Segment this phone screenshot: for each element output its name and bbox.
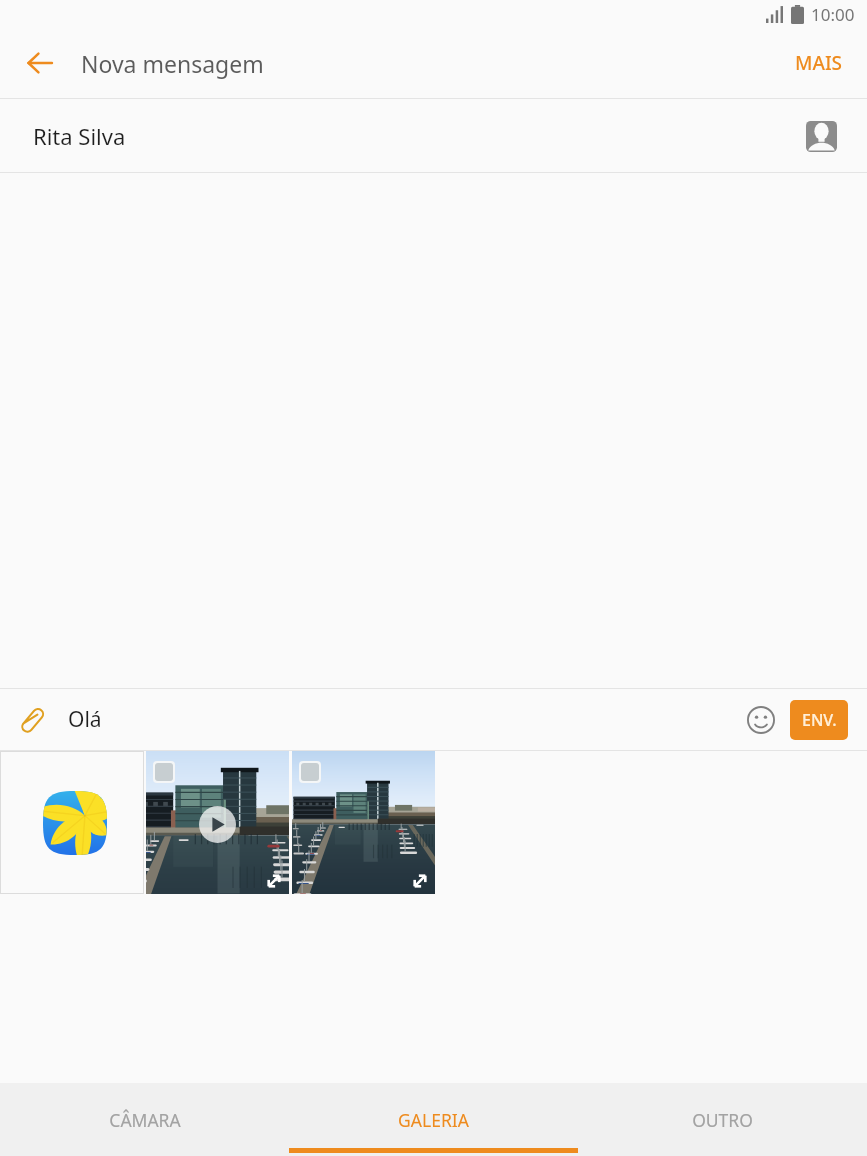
button[interactable]: OUTRO — [578, 1083, 867, 1156]
button[interactable]: Select — [301, 763, 319, 781]
button[interactable]: Photo thumbnail — [292, 751, 435, 894]
button[interactable]: Expand — [409, 870, 431, 892]
button[interactable]: Rita Silva — [0, 99, 867, 172]
button[interactable]: Gallery app — [0, 751, 144, 894]
button[interactable]: CÂMARA — [0, 1083, 289, 1156]
button[interactable]: Add recipient — [801, 116, 841, 156]
button[interactable]: Back — [15, 38, 65, 88]
staticText: CÂMARA — [109, 1108, 181, 1132]
button[interactable]: Attach — [11, 698, 55, 742]
staticText: OUTRO — [692, 1108, 753, 1132]
staticText: Nova mensagem — [81, 48, 264, 79]
button[interactable]: MAIS — [771, 28, 867, 98]
staticText: Rita Silva — [33, 121, 126, 151]
button[interactable]: Video thumbnail — [146, 751, 289, 894]
staticText: ENV. — [802, 709, 837, 731]
button[interactable]: Select — [155, 763, 173, 781]
staticText: GALERIA — [398, 1108, 469, 1132]
button[interactable]: Emoji — [739, 698, 783, 742]
button[interactable]: GALERIA — [289, 1083, 578, 1156]
staticText: Olá — [68, 705, 102, 734]
button[interactable]: Expand — [263, 870, 285, 892]
staticText: MAIS — [795, 50, 843, 76]
staticText: 10:00 — [811, 3, 855, 26]
button[interactable]: ENV. — [790, 700, 848, 740]
